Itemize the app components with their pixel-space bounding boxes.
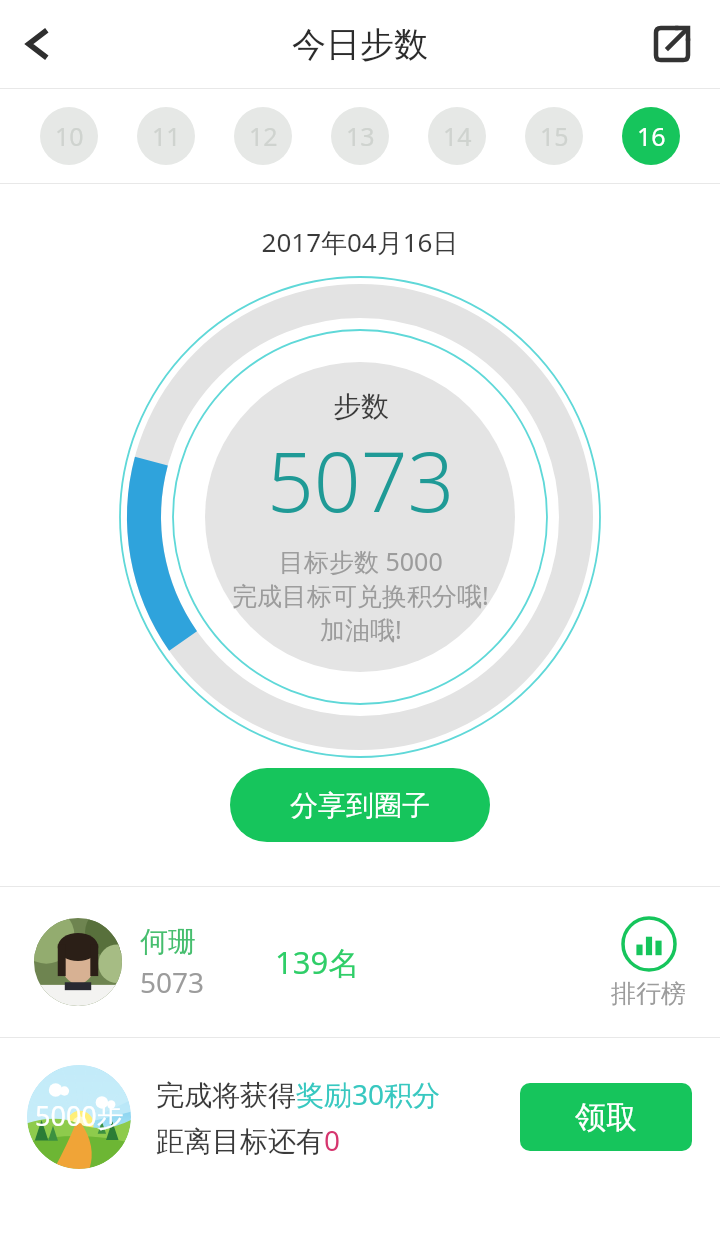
staticText: 目标步数 5000 xyxy=(279,544,443,578)
button[interactable]: 16 xyxy=(622,107,680,165)
button[interactable]: 12 xyxy=(234,107,292,165)
button[interactable]: 15 xyxy=(525,107,583,165)
staticText: 何珊 xyxy=(140,924,196,959)
staticText: 11 xyxy=(152,119,181,153)
staticText: 139名 xyxy=(275,941,360,983)
staticText: 12 xyxy=(249,119,278,153)
staticText: 5000步 xyxy=(35,1097,124,1134)
staticText: 完成目标可兑换积分哦! xyxy=(232,578,489,612)
staticText: 2017年04月16日 xyxy=(0,224,720,260)
staticText: 14 xyxy=(443,119,472,153)
staticText: 5073 xyxy=(267,424,455,536)
staticText: 16 xyxy=(637,119,666,153)
button[interactable]: Back xyxy=(6,11,72,77)
button[interactable]: 排行榜 xyxy=(611,916,686,1009)
staticText: 15 xyxy=(540,119,569,153)
staticText: 距离目标还有0 xyxy=(156,1121,341,1159)
button[interactable]: 分享到圈子 xyxy=(230,768,490,842)
button[interactable]: 13 xyxy=(331,107,389,165)
button[interactable]: 领取 xyxy=(520,1083,692,1151)
button[interactable]: 11 xyxy=(137,107,195,165)
staticText: 完成将获得奖励30积分 xyxy=(156,1075,441,1113)
staticText: 今日步数 xyxy=(292,23,428,66)
staticText: 10 xyxy=(55,119,84,153)
button[interactable]: 10 xyxy=(40,107,98,165)
staticText: 加油哦! xyxy=(320,612,402,646)
staticText: 分享到圈子 xyxy=(290,788,430,823)
staticText: 步数 xyxy=(333,389,389,424)
button[interactable]: 何珊 xyxy=(0,887,720,1037)
staticText: 5073 xyxy=(140,963,205,1001)
button[interactable]: 14 xyxy=(428,107,486,165)
staticText: 领取 xyxy=(575,1098,637,1137)
staticText: 排行榜 xyxy=(611,978,686,1009)
staticText: 13 xyxy=(346,119,375,153)
button[interactable]: Share xyxy=(640,12,704,76)
